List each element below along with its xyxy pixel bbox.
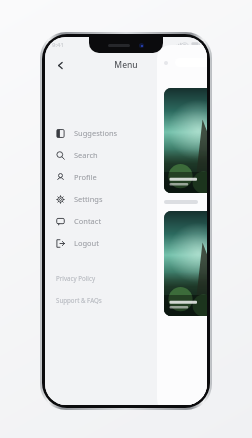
staticText: Suggestions — [74, 128, 118, 138]
button[interactable]: Suggestions — [45, 122, 207, 144]
button[interactable]: Contact — [45, 210, 207, 232]
button[interactable]: Privacy Policy — [56, 270, 96, 286]
staticText: Contact — [74, 216, 102, 226]
staticText: Search — [74, 150, 98, 160]
staticText: Support & FAQs — [56, 296, 102, 304]
staticText: 9:41 — [52, 41, 64, 49]
staticText: Settings — [74, 194, 103, 204]
button[interactable]: Settings — [45, 188, 207, 210]
button[interactable]: Logout — [45, 232, 207, 254]
staticText: Privacy Policy — [56, 274, 96, 282]
staticText: Profile — [74, 172, 97, 182]
staticText: Menu — [114, 59, 138, 71]
button[interactable] — [164, 211, 207, 316]
button[interactable]: Profile — [45, 166, 207, 188]
button[interactable] — [164, 88, 207, 193]
button[interactable]: Search — [45, 144, 207, 166]
staticText: Logout — [74, 238, 99, 248]
button[interactable]: Support & FAQs — [56, 292, 102, 308]
button[interactable]: Back — [50, 55, 70, 75]
